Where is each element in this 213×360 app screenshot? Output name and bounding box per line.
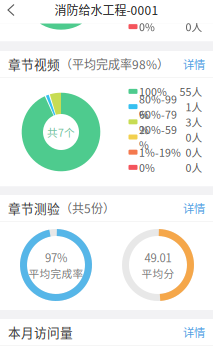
staticText: 0人 [185, 19, 202, 34]
button[interactable]: 详情 [180, 320, 208, 344]
staticText: 详情 [183, 324, 205, 340]
staticText: 49.01 [144, 249, 171, 265]
staticText: 平均完成率 [28, 265, 83, 281]
staticText: 1%-19% [139, 144, 181, 160]
staticText: 55人 [179, 84, 202, 99]
staticText: 3人 [185, 114, 202, 129]
staticText: 0% [139, 160, 155, 175]
staticText: 消防给水工程-0001 [54, 1, 158, 18]
staticText: 0% [139, 19, 155, 34]
staticText: 共7个 [47, 124, 75, 140]
staticText: 60%-79% [139, 106, 177, 137]
button[interactable]: 详情 [180, 196, 208, 220]
staticText: 平均分 [141, 265, 174, 281]
staticText: 97% [45, 249, 67, 265]
staticText: 本月访问量 [8, 323, 73, 341]
staticText: 章节视频 [8, 55, 60, 73]
staticText: 20%-59% [139, 122, 177, 152]
staticText: 章节测验 [8, 199, 60, 217]
staticText: 0人 [185, 144, 202, 160]
button[interactable]: 详情 [180, 52, 208, 76]
staticText: 详情 [183, 200, 205, 216]
button[interactable]: 返回 [0, 0, 24, 20]
staticText: 80%-99% [139, 91, 177, 122]
staticText: （平均完成率98%） [60, 55, 169, 73]
staticText: 100% [139, 84, 167, 99]
staticText: 详情 [183, 56, 205, 72]
staticText: 1人 [185, 99, 202, 114]
staticText: 0人 [185, 129, 202, 145]
staticText: （共5份） [60, 199, 115, 217]
staticText: 0人 [185, 160, 202, 175]
